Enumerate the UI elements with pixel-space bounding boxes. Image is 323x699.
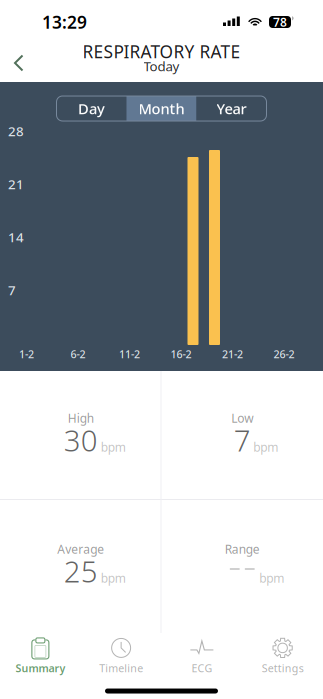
button[interactable]: Settings [242, 633, 323, 681]
staticText: Timeline [99, 661, 143, 675]
staticText: Today [143, 57, 179, 75]
staticText: Range [225, 541, 260, 557]
staticText: bpm [101, 439, 126, 455]
staticText: RESPIRATORY RATE [82, 40, 240, 63]
staticText: 6-2 [70, 347, 85, 361]
button[interactable]: Back [0, 45, 38, 80]
staticText: 13:29 [42, 10, 87, 33]
button[interactable]: Year [196, 96, 266, 121]
staticText: Settings [262, 661, 304, 675]
button[interactable]: Timeline [81, 633, 162, 681]
staticText: 28 [8, 122, 24, 140]
button[interactable]: Summary [0, 633, 81, 681]
staticText: 25 [64, 551, 98, 590]
staticText: 1-2 [19, 347, 34, 361]
staticText: Low [231, 410, 253, 426]
staticText: 14 [8, 228, 24, 246]
staticText: High [68, 410, 94, 426]
staticText: 21 [8, 175, 24, 193]
staticText: Month [138, 99, 184, 118]
staticText: Summary [15, 661, 65, 675]
staticText: Year [216, 99, 246, 118]
staticText: 7 [234, 420, 251, 459]
staticText: ECG [191, 661, 212, 675]
staticText: 30 [64, 420, 98, 459]
button[interactable]: ECG [161, 633, 242, 681]
button[interactable]: Day [56, 96, 126, 121]
staticText: bpm [101, 570, 126, 586]
button[interactable]: Month [126, 96, 196, 121]
staticText: bpm [253, 439, 278, 455]
staticText: 26-2 [273, 347, 294, 361]
staticText: Day [78, 99, 105, 118]
staticText: 78 [273, 14, 287, 30]
staticText: 7 [8, 281, 16, 299]
staticText: 11-2 [119, 347, 140, 361]
staticText: Average [57, 541, 104, 557]
staticText: 21-2 [222, 347, 243, 361]
staticText: bpm [259, 570, 284, 586]
staticText: 16-2 [170, 347, 191, 361]
